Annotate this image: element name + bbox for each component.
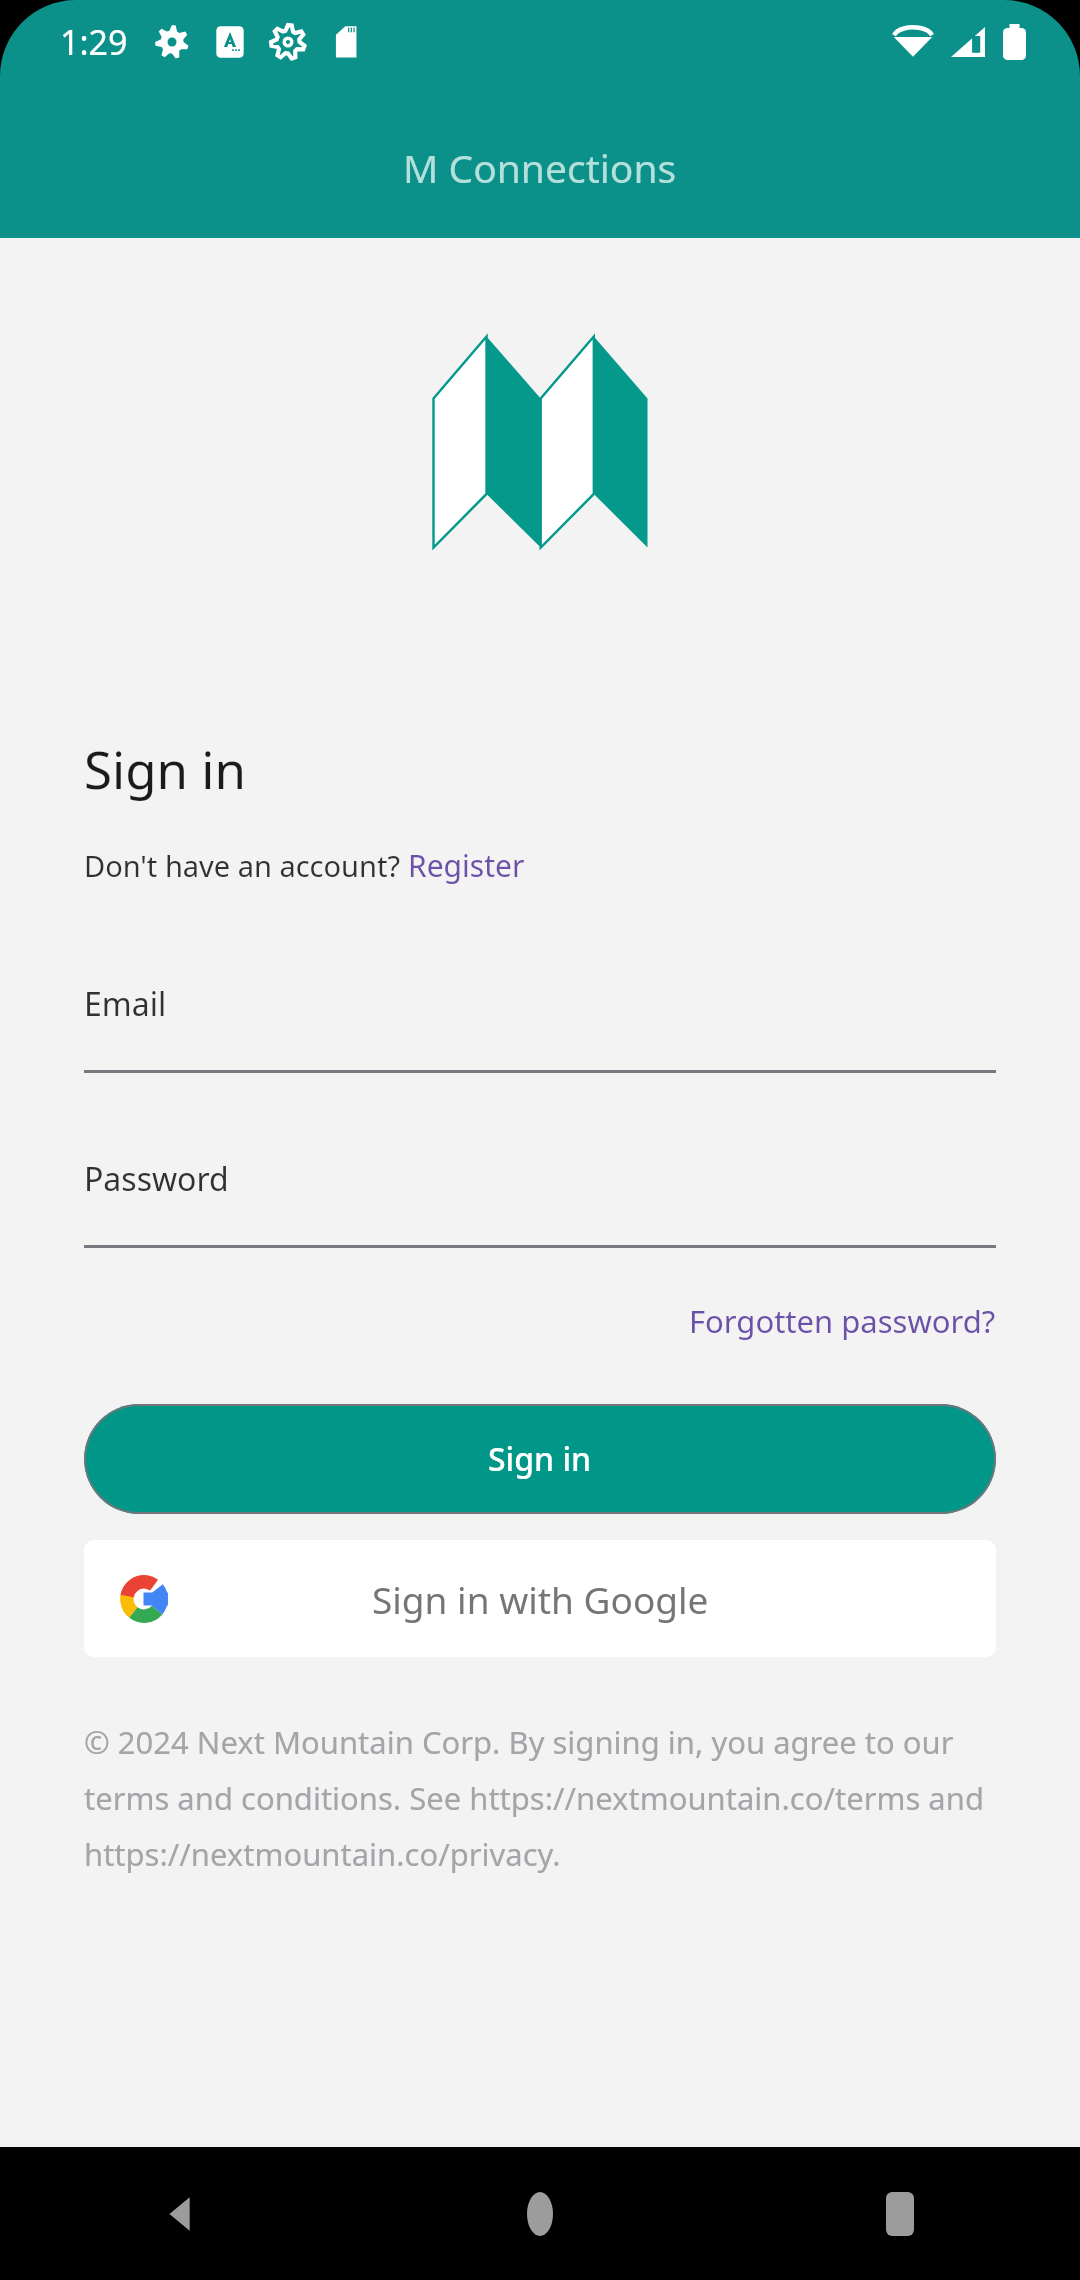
staticText: Email — [84, 982, 167, 1026]
staticText: Sign in — [488, 1437, 592, 1481]
staticText: Sign in with Google — [372, 1574, 709, 1624]
button[interactable]: Recent apps — [720, 2147, 1080, 2280]
button[interactable]: Back — [0, 2147, 360, 2280]
button[interactable]: Email — [84, 982, 996, 1073]
staticText: Don't have an account? — [84, 846, 408, 885]
staticText: Register — [408, 845, 525, 886]
staticText: 1:29 — [60, 19, 128, 65]
staticText: © 2024 Next Mountain Corp. By signing in… — [84, 1721, 996, 1875]
button[interactable]: Home — [360, 2147, 720, 2280]
button[interactable]: Google — [84, 1540, 996, 1657]
button[interactable]: Sign in — [84, 1404, 996, 1514]
staticText: Forgotten password? — [689, 1300, 996, 1342]
staticText: M Connections — [403, 141, 677, 194]
button[interactable]: Register — [408, 845, 525, 886]
button[interactable]: Forgotten password? — [689, 1300, 996, 1342]
other: Next Mountain logo — [433, 336, 648, 548]
other: Google — [118, 1573, 170, 1625]
staticText: Sign in — [84, 734, 246, 803]
button[interactable]: Password — [84, 1157, 996, 1248]
staticText: Password — [84, 1157, 229, 1201]
